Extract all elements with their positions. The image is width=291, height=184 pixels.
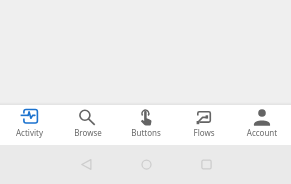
button[interactable]: Browse: [59, 105, 117, 145]
button[interactable]: Account: [233, 105, 291, 145]
staticText: Account: [233, 127, 291, 138]
staticText: Browse: [59, 127, 117, 138]
button[interactable]: Back: [56, 145, 116, 184]
staticText: Activity: [0, 127, 59, 138]
button[interactable]: Buttons: [117, 105, 175, 145]
staticText: Buttons: [117, 127, 175, 138]
staticText: Flows: [175, 127, 233, 138]
button[interactable]: Flows: [175, 105, 233, 145]
button[interactable]: Activity: [0, 105, 59, 145]
button[interactable]: Recent apps: [176, 145, 236, 184]
